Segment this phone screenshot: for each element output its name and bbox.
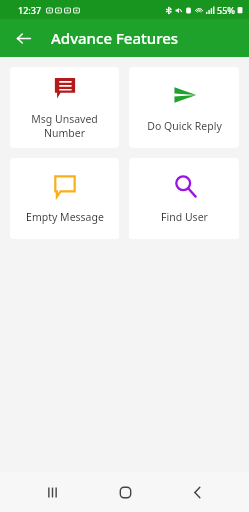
staticText: 55% — [217, 4, 235, 16]
staticText: Empty Message — [26, 210, 104, 224]
staticText: Advance Features — [51, 28, 179, 48]
staticText: Do Quick Reply — [147, 119, 222, 133]
button[interactable]: Back — [177, 472, 217, 512]
button[interactable]: Recent apps — [32, 472, 72, 512]
staticText: 12:37 — [18, 4, 42, 16]
button[interactable]: Back — [10, 25, 36, 51]
staticText: Find User — [161, 210, 208, 224]
button[interactable]: Empty Message — [10, 158, 119, 239]
button[interactable]: Find User — [129, 158, 239, 239]
staticText: Msg Unsaved Number — [10, 112, 119, 140]
button[interactable]: Home — [105, 472, 145, 512]
button[interactable]: Msg Unsaved Number — [10, 67, 119, 148]
button[interactable]: Do Quick Reply — [129, 67, 239, 148]
